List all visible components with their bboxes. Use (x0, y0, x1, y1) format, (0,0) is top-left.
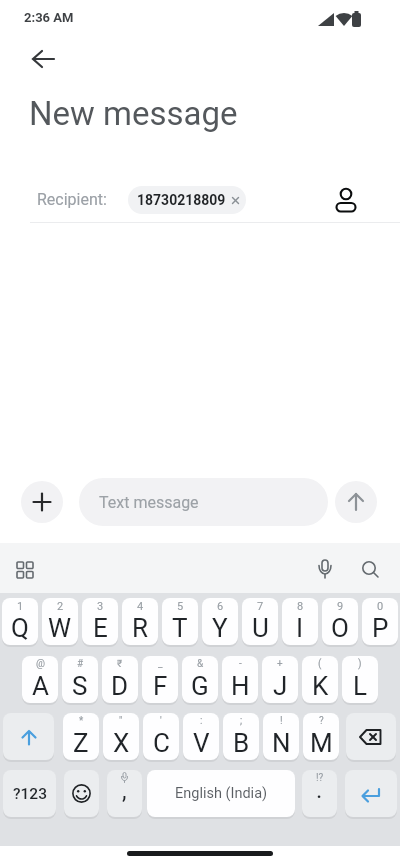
staticText: 0 (377, 600, 384, 613)
button[interactable]: 5 (162, 598, 198, 645)
staticText: 9 (337, 600, 344, 613)
button[interactable]: ?123 (3, 770, 56, 817)
button[interactable]: & (182, 656, 218, 703)
button[interactable] (346, 713, 396, 760)
staticText: F (153, 671, 168, 701)
staticText: 2:36 AM (24, 10, 74, 25)
button[interactable]: 6 (202, 598, 238, 645)
staticText: 18730218809 (137, 192, 226, 208)
staticText: L (353, 671, 368, 701)
button[interactable]: 9 (322, 598, 358, 645)
staticText: S (72, 671, 88, 701)
button[interactable]: !? (302, 770, 337, 817)
button[interactable] (335, 481, 377, 523)
staticText: English (India) (175, 785, 268, 802)
staticText: U (252, 613, 269, 643)
staticText: D (111, 671, 129, 701)
staticText: ? (319, 715, 324, 727)
button[interactable]: ; (223, 713, 259, 760)
staticText: 5 (177, 600, 184, 613)
staticText: 1 (17, 600, 24, 613)
button[interactable]: * (63, 713, 99, 760)
staticText: Q (11, 613, 29, 643)
button[interactable]: # (62, 656, 98, 703)
staticText: T (172, 613, 188, 643)
staticText: New message (29, 94, 238, 133)
staticText: " (119, 715, 123, 727)
button[interactable] (9, 554, 41, 586)
staticText: ; (240, 715, 243, 727)
button[interactable]: 3 (82, 598, 118, 645)
staticText: B (233, 728, 250, 758)
staticText: @ (36, 658, 45, 670)
button[interactable] (354, 554, 386, 586)
button[interactable]: ( (302, 656, 338, 703)
staticText: Z (73, 728, 89, 758)
staticText: Y (212, 613, 228, 643)
staticText: I (296, 613, 304, 643)
button[interactable]: @ (22, 656, 58, 703)
staticText: E (93, 613, 108, 643)
button[interactable]: - (222, 656, 258, 703)
staticText: , (122, 778, 127, 805)
button[interactable] (20, 40, 64, 78)
staticText: R (132, 613, 149, 643)
staticText: W (48, 613, 72, 643)
staticText: ?123 (13, 785, 47, 803)
staticText: # (77, 658, 84, 670)
button[interactable] (345, 770, 397, 817)
staticText: 8 (297, 600, 304, 613)
button[interactable] (3, 713, 54, 760)
button[interactable]: " (103, 713, 139, 760)
button[interactable] (309, 554, 341, 586)
staticText: O (331, 613, 349, 643)
button[interactable]: ? (303, 713, 339, 760)
button[interactable]: ' (143, 713, 179, 760)
button[interactable]: ₹ (102, 656, 138, 703)
button[interactable]: 4 (122, 598, 158, 645)
staticText: + (277, 658, 283, 670)
staticText: _ (158, 658, 163, 670)
staticText: Recipient: (37, 190, 107, 209)
staticText: A (32, 671, 49, 701)
button[interactable]: 2 (42, 598, 78, 645)
staticText: ₹ (117, 658, 123, 670)
staticText: 4 (137, 600, 144, 613)
button[interactable]: 18730218809 (128, 186, 246, 214)
button[interactable]: Text message (79, 478, 328, 526)
staticText: - (239, 658, 242, 670)
staticText: V (193, 728, 210, 758)
button[interactable]: + (262, 656, 298, 703)
staticText: N (272, 728, 291, 758)
button[interactable]: ) (342, 656, 378, 703)
staticText: & (197, 658, 204, 670)
staticText: C (153, 728, 170, 758)
button[interactable] (21, 481, 63, 523)
staticText: H (231, 671, 250, 701)
button[interactable]: , (107, 770, 142, 817)
staticText: ) (358, 658, 362, 670)
staticText: 2 (57, 600, 64, 613)
button[interactable]: 1 (2, 598, 38, 645)
button[interactable]: _ (142, 656, 178, 703)
staticText: !? (316, 772, 324, 784)
button[interactable]: : (183, 713, 219, 760)
staticText: ! (280, 715, 283, 727)
staticText: * (79, 715, 84, 727)
staticText: P (372, 613, 389, 643)
button[interactable]: 8 (282, 598, 318, 645)
staticText: : (200, 715, 203, 727)
button[interactable]: English (India) (147, 770, 295, 817)
staticText: J (273, 671, 288, 701)
button[interactable]: 7 (242, 598, 278, 645)
staticText: X (113, 728, 130, 758)
button[interactable] (64, 770, 99, 817)
staticText: 3 (97, 600, 104, 613)
button[interactable]: 0 (362, 598, 398, 645)
staticText: ' (160, 715, 162, 727)
button[interactable]: ! (263, 713, 299, 760)
staticText: K (312, 671, 329, 701)
staticText: . (316, 776, 323, 804)
staticText: ( (318, 658, 322, 670)
button[interactable] (328, 184, 364, 218)
